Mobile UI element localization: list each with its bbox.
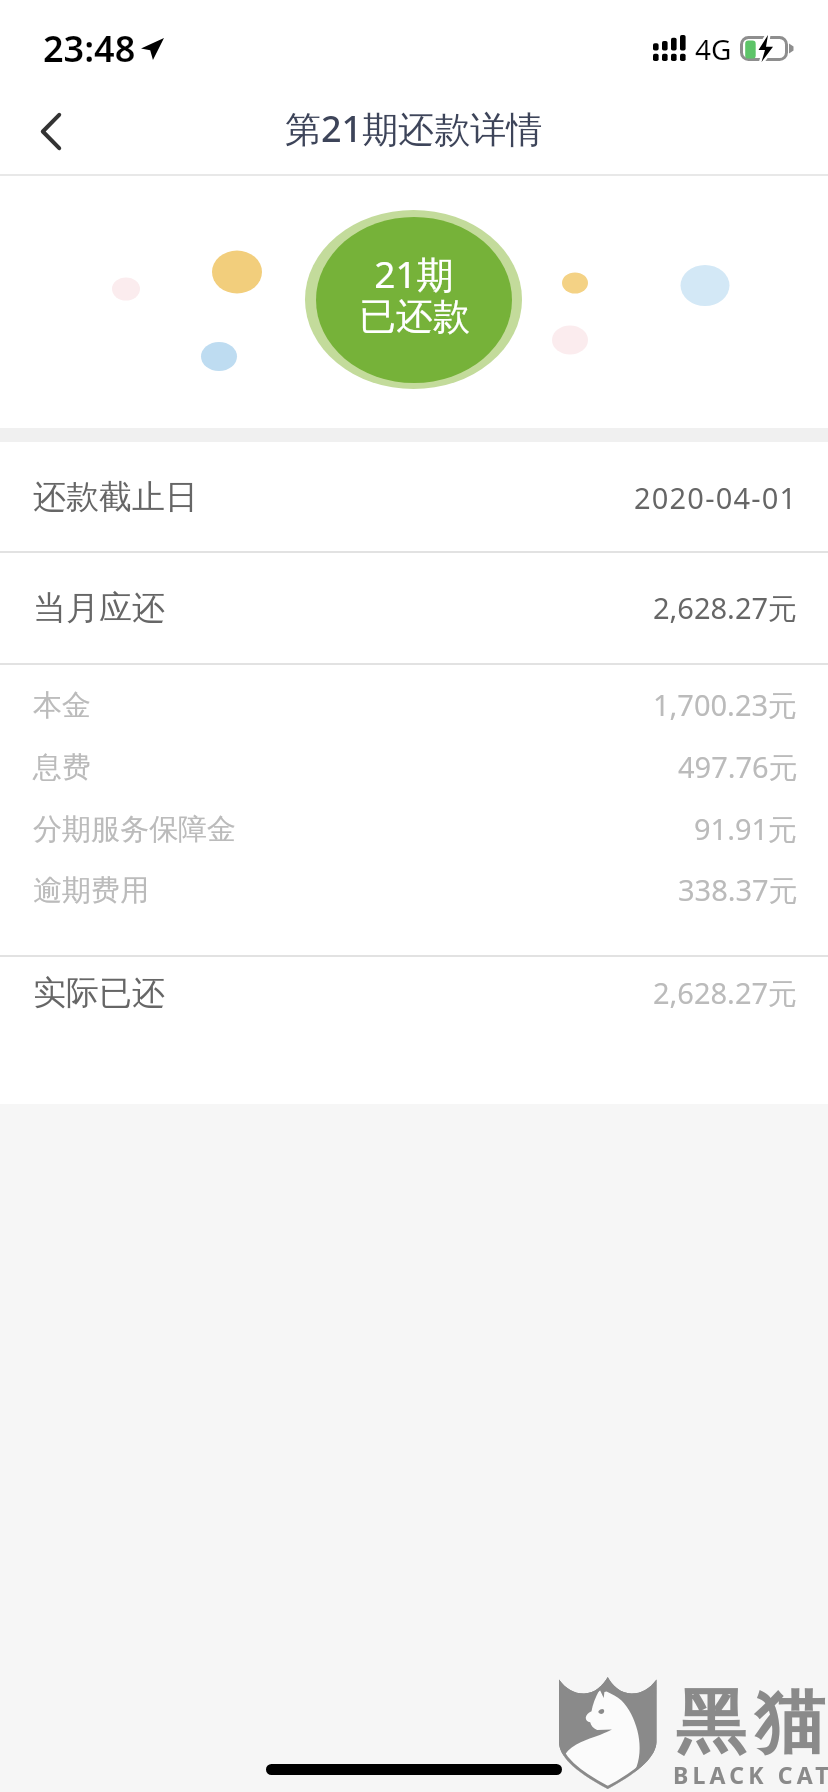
button[interactable]: 当月应还 xyxy=(0,553,828,663)
staticText: 2,628.27元 xyxy=(653,973,798,1013)
staticText: 逾期费用 xyxy=(33,872,149,909)
button[interactable]: 本金 xyxy=(0,674,828,736)
staticText: 分期服务保障金 xyxy=(33,811,236,848)
button[interactable]: 实际已还 xyxy=(0,957,828,1029)
staticText: 还款截止日 xyxy=(33,476,198,518)
staticText: 23:48 xyxy=(43,24,136,73)
button[interactable]: Back xyxy=(0,88,104,177)
staticText: 4G xyxy=(695,30,732,68)
button[interactable]: 分期服务保障金 xyxy=(0,798,828,860)
button[interactable]: 息费 xyxy=(0,736,828,798)
staticText: 338.37元 xyxy=(678,870,798,910)
staticText: 第21期还款详情 xyxy=(285,104,543,153)
staticText: 91.91元 xyxy=(694,809,798,849)
staticText: 21期 xyxy=(374,248,454,299)
staticText: 2,628.27元 xyxy=(653,588,798,628)
staticText: 当月应还 xyxy=(33,587,165,629)
staticText: 息费 xyxy=(33,749,91,786)
staticText: 497.76元 xyxy=(678,747,798,787)
button[interactable]: 逾期费用 xyxy=(0,859,828,921)
staticText: 实际已还 xyxy=(33,972,165,1014)
staticText: 2020-04-01 xyxy=(634,478,798,517)
staticText: BLACK CAT xyxy=(673,1759,828,1790)
staticText: 1,700.23元 xyxy=(653,685,798,725)
staticText: 已还款 xyxy=(359,293,470,340)
staticText: 本金 xyxy=(33,687,91,724)
staticText: 黑猫 xyxy=(671,1679,828,1767)
button[interactable]: 还款截止日 xyxy=(0,442,828,552)
